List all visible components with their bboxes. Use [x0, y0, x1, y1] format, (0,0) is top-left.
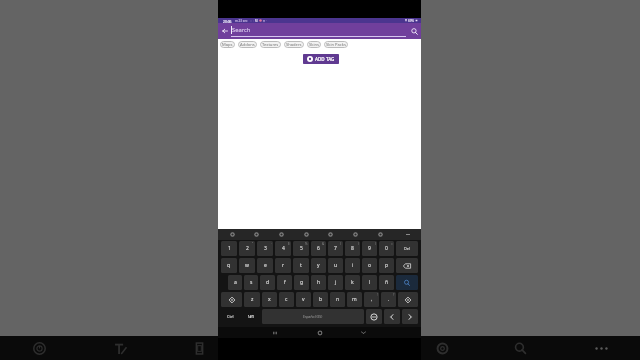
staticText: k	[351, 279, 354, 286]
button[interactable]: 4	[275, 241, 291, 256]
button[interactable]: b	[313, 292, 328, 307]
button[interactable]: Skin Packs	[324, 41, 348, 48]
button[interactable]: Home	[314, 327, 325, 338]
button[interactable]: Search	[508, 336, 532, 360]
button[interactable]: s	[244, 275, 258, 290]
button[interactable]: c	[279, 292, 294, 307]
staticText: )	[375, 242, 376, 246]
button[interactable]: Search	[396, 275, 418, 290]
button[interactable]: e	[257, 258, 273, 273]
button[interactable]: l	[362, 275, 377, 290]
button[interactable]: .	[381, 292, 396, 307]
button[interactable]: z	[244, 292, 260, 307]
staticText: 69%	[408, 19, 414, 23]
button[interactable]: ADD TAG	[303, 54, 339, 64]
button[interactable]: Settings	[430, 336, 454, 360]
button[interactable]: o	[362, 258, 377, 273]
button[interactable]: Textures	[260, 41, 281, 48]
button[interactable]: d	[260, 275, 275, 290]
button[interactable]: Search	[408, 23, 421, 39]
staticText: o	[368, 262, 372, 269]
button[interactable]: w	[239, 258, 255, 273]
button[interactable]: Theme	[374, 229, 386, 240]
button[interactable]: Timer	[27, 336, 51, 360]
button[interactable]: 0	[379, 241, 394, 256]
staticText: z	[251, 296, 254, 303]
staticText: v	[302, 296, 305, 303]
button[interactable]: !#1	[241, 309, 261, 324]
button[interactable]: j	[328, 275, 343, 290]
button[interactable]: t	[293, 258, 309, 273]
button[interactable]: 1	[221, 241, 237, 256]
button[interactable]: Sticker	[300, 229, 312, 240]
button[interactable]: 8	[345, 241, 360, 256]
button[interactable]: Maps	[220, 41, 235, 48]
button[interactable]: Hide keyboard	[358, 327, 369, 338]
button[interactable]: Backspace	[396, 258, 418, 273]
button[interactable]: v	[296, 292, 311, 307]
button[interactable]: Shift	[221, 292, 242, 307]
button[interactable]: ,	[364, 292, 379, 307]
staticText: w	[245, 262, 249, 269]
button[interactable]: Skins	[307, 41, 321, 48]
staticText: j	[335, 279, 337, 286]
button[interactable]: Text format	[108, 336, 132, 360]
button[interactable]: n	[330, 292, 345, 307]
button[interactable]: Recents	[269, 327, 280, 338]
button[interactable]: 2	[239, 241, 255, 256]
button[interactable]: p	[379, 258, 394, 273]
button[interactable]: Ctrl	[220, 309, 241, 324]
staticText: ADD TAG	[315, 56, 335, 62]
staticText: ▼	[405, 19, 407, 22]
button[interactable]: Previous	[384, 309, 400, 324]
staticText: 5	[300, 245, 303, 252]
button[interactable]: Voice	[324, 229, 336, 240]
staticText: 20:06	[223, 19, 232, 23]
button[interactable]: Español (ES)	[262, 309, 364, 324]
staticText: Del	[404, 246, 410, 251]
button[interactable]: Del	[396, 241, 418, 256]
button[interactable]: Next	[402, 309, 418, 324]
button[interactable]: Shaders	[284, 41, 304, 48]
staticText: !#1	[248, 314, 254, 319]
staticText: 0	[385, 245, 388, 252]
staticText: "	[252, 242, 254, 246]
button[interactable]: r	[275, 258, 291, 273]
staticText: q	[227, 262, 231, 269]
button[interactable]: f	[277, 275, 292, 290]
button[interactable]: y	[311, 258, 326, 273]
button[interactable]: Settings	[226, 229, 238, 240]
button[interactable]: Shift	[398, 292, 418, 307]
staticText: Shaders	[286, 42, 302, 48]
staticText: 8	[351, 245, 354, 252]
button[interactable]: m	[347, 292, 362, 307]
button[interactable]: q	[221, 258, 237, 273]
button[interactable]: a	[228, 275, 242, 290]
button[interactable]: g	[294, 275, 309, 290]
button[interactable]: h	[311, 275, 326, 290]
button[interactable]: 3	[257, 241, 273, 256]
button[interactable]: 6	[311, 241, 326, 256]
staticText: r	[282, 262, 285, 269]
staticText: Ctrl	[227, 314, 234, 319]
button[interactable]: x	[262, 292, 277, 307]
button[interactable]: More	[402, 229, 414, 240]
staticText: 3	[264, 245, 267, 252]
button[interactable]: u	[328, 258, 343, 273]
button[interactable]: Clipboard	[275, 229, 287, 240]
button[interactable]: Emoji	[366, 309, 382, 324]
button[interactable]: Translate	[349, 229, 361, 240]
staticText: .	[388, 296, 390, 303]
button[interactable]: Addons	[238, 41, 257, 48]
button[interactable]: 5	[293, 241, 309, 256]
button[interactable]: 7	[328, 241, 343, 256]
button[interactable]: Crop	[187, 336, 211, 360]
staticText: Español (ES)	[303, 314, 323, 319]
button[interactable]: ñ	[379, 275, 394, 290]
button[interactable]: Back	[218, 23, 231, 39]
button[interactable]: 9	[362, 241, 377, 256]
button[interactable]: Emoji	[250, 229, 262, 240]
button[interactable]: k	[345, 275, 360, 290]
button[interactable]: More options	[589, 336, 613, 360]
button[interactable]: i	[345, 258, 360, 273]
